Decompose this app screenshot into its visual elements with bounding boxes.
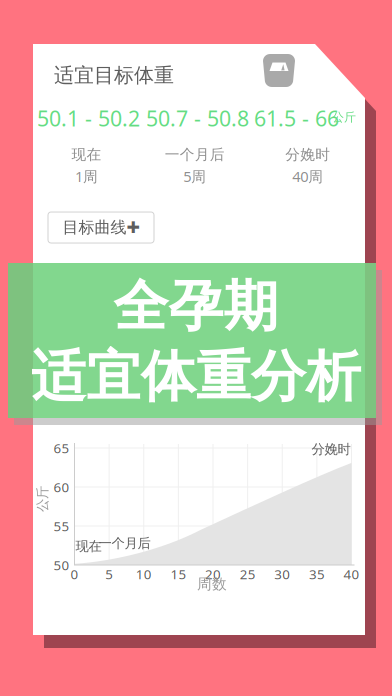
staticText: 周数 — [197, 575, 227, 593]
staticText: 10 — [136, 565, 152, 583]
staticText: 40周 — [292, 166, 323, 186]
staticText: 15 — [170, 565, 186, 583]
staticText: 30 — [274, 565, 290, 583]
staticText: 5 — [105, 565, 113, 583]
staticText: 目标曲线 — [62, 218, 126, 237]
staticText: 公斤 — [29, 491, 55, 507]
staticText: 35 — [309, 565, 325, 583]
staticText: 0 — [70, 565, 78, 583]
staticText: 一个月后 — [98, 535, 150, 551]
staticText: 55 — [53, 517, 69, 535]
staticText: 60 — [53, 478, 69, 496]
staticText: 现在 — [71, 145, 101, 163]
staticText: 50.7 - 50.8 — [146, 104, 249, 132]
staticText: 分娩时 — [285, 145, 330, 163]
button[interactable]: 目标曲线 — [48, 212, 154, 243]
staticText: 20 — [205, 565, 221, 583]
staticText: 50 — [53, 556, 69, 574]
staticText: 公斤 — [332, 110, 356, 125]
staticText: ✚ — [126, 218, 139, 237]
staticText: 61.5 - 66 — [254, 104, 339, 132]
staticText: 65 — [53, 439, 69, 457]
staticText: 适宜体重分析 — [31, 343, 361, 410]
staticText: 25 — [240, 565, 256, 583]
staticText: 分娩时 — [311, 441, 350, 457]
staticText: 50.1 - 50.2 — [37, 104, 140, 132]
staticText: 现在 — [75, 538, 101, 554]
staticText: 5周 — [183, 166, 206, 186]
staticText: 适宜目标体重 — [54, 63, 174, 88]
staticText: 40 — [343, 565, 359, 583]
staticText: 全孕期 — [113, 273, 278, 340]
staticText: 一个月后 — [165, 145, 225, 163]
staticText: 1周 — [75, 166, 98, 186]
